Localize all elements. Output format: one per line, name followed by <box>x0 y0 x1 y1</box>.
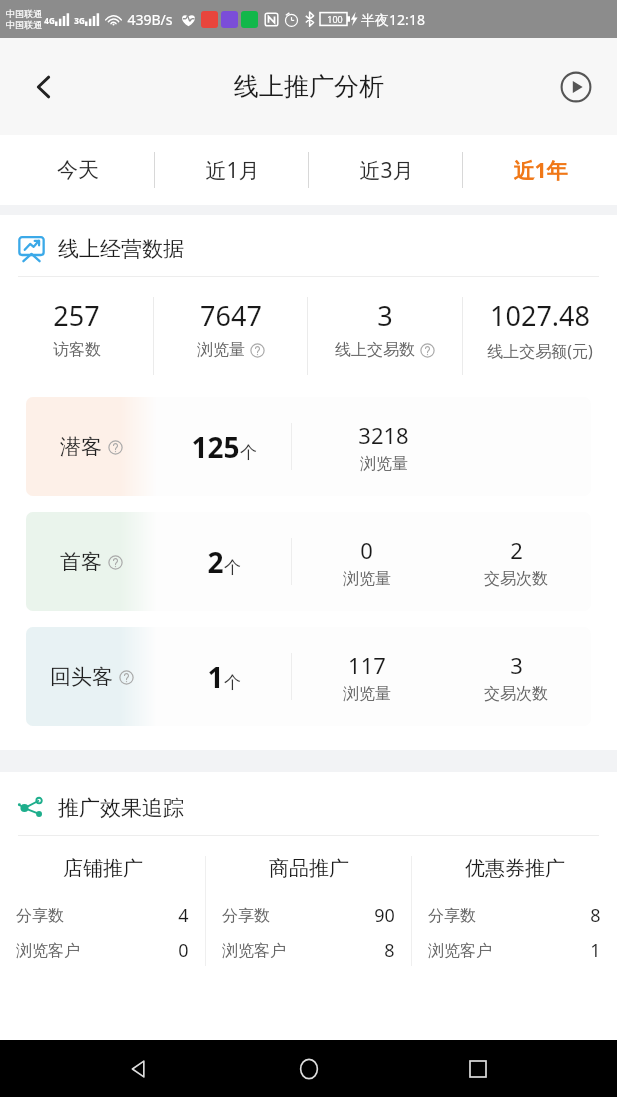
button[interactable]: 257 <box>0 297 153 375</box>
staticText: 近1年 <box>513 156 568 185</box>
button[interactable]: Recents <box>448 1040 508 1097</box>
staticText: 首客 <box>60 549 102 575</box>
button[interactable]: 潜客 <box>26 397 591 496</box>
staticText: 3 <box>377 297 393 334</box>
staticText: 8 <box>384 938 395 963</box>
button[interactable]: 商品推广 <box>222 856 395 966</box>
button[interactable]: 1027.48 <box>463 297 617 375</box>
staticText: 潜客 <box>60 434 102 460</box>
staticText: 1 <box>590 938 601 963</box>
button[interactable]: 7647 <box>154 297 307 375</box>
staticText: 浏览客户 <box>16 941 80 961</box>
staticText: 个 <box>224 672 241 693</box>
button[interactable]: 回头客 <box>26 627 591 726</box>
button[interactable]: 3 <box>308 297 462 375</box>
button[interactable]: 近3月 <box>309 135 463 205</box>
staticText: 商品推广 <box>269 856 349 881</box>
staticText: 125 <box>191 428 240 466</box>
button[interactable]: 优惠券推广 <box>428 856 601 966</box>
staticText: 7647 <box>200 297 262 334</box>
staticText: 4G <box>44 15 55 26</box>
staticText: 中国联通 <box>6 19 42 30</box>
staticText: 个 <box>240 442 257 463</box>
staticText: 浏览量 <box>360 454 408 474</box>
staticText: 分享数 <box>16 906 64 926</box>
button[interactable]: 店铺推广 <box>16 856 189 966</box>
button[interactable]: 首客 <box>26 512 591 611</box>
staticText: 线上经营数据 <box>58 236 184 262</box>
staticText: 3 <box>510 650 523 680</box>
staticText: 个 <box>224 557 241 578</box>
staticText: 8 <box>590 903 601 928</box>
staticText: 浏览客户 <box>428 941 492 961</box>
staticText: 117 <box>348 650 386 680</box>
staticText: 访客数 <box>53 340 101 360</box>
staticText: 3218 <box>358 420 409 450</box>
staticText: 2 <box>207 543 224 581</box>
button[interactable]: Play <box>551 62 601 112</box>
staticText: 线上交易数 <box>335 340 415 360</box>
staticText: 439B/s <box>127 10 173 29</box>
staticText: 回头客 <box>50 664 113 690</box>
staticText: 线上推广分析 <box>234 71 384 102</box>
staticText: 优惠券推广 <box>465 856 565 881</box>
staticText: 3G <box>74 15 85 26</box>
staticText: 交易次数 <box>484 684 548 704</box>
button[interactable]: Back <box>16 59 72 115</box>
staticText: 分享数 <box>222 906 270 926</box>
staticText: 0 <box>360 535 373 565</box>
staticText: 90 <box>374 903 395 928</box>
staticText: 中国联通 <box>6 8 42 19</box>
staticText: 1 <box>207 658 224 696</box>
button[interactable]: Home <box>279 1040 339 1097</box>
staticText: 1027.48 <box>490 297 590 334</box>
staticText: 近3月 <box>359 156 414 185</box>
staticText: 100 <box>327 13 343 25</box>
staticText: 半夜12:18 <box>361 10 425 29</box>
staticText: 浏览客户 <box>222 941 286 961</box>
staticText: 线上交易额(元) <box>487 340 593 362</box>
staticText: 店铺推广 <box>63 856 143 881</box>
staticText: 交易次数 <box>484 569 548 589</box>
staticText: 浏览量 <box>343 684 391 704</box>
staticText: 257 <box>53 297 100 334</box>
staticText: 近1月 <box>205 156 260 185</box>
staticText: 分享数 <box>428 906 476 926</box>
staticText: 今天 <box>57 157 99 183</box>
button[interactable]: 近1月 <box>155 135 309 205</box>
staticText: 2 <box>510 535 523 565</box>
staticText: 4 <box>178 903 189 928</box>
staticText: 浏览量 <box>343 569 391 589</box>
button[interactable]: 今天 <box>0 135 155 205</box>
button[interactable]: 近1年 <box>463 135 617 205</box>
staticText: 0 <box>178 938 189 963</box>
button[interactable]: Back <box>109 1040 169 1097</box>
staticText: 浏览量 <box>197 340 245 360</box>
staticText: 推广效果追踪 <box>58 795 184 821</box>
